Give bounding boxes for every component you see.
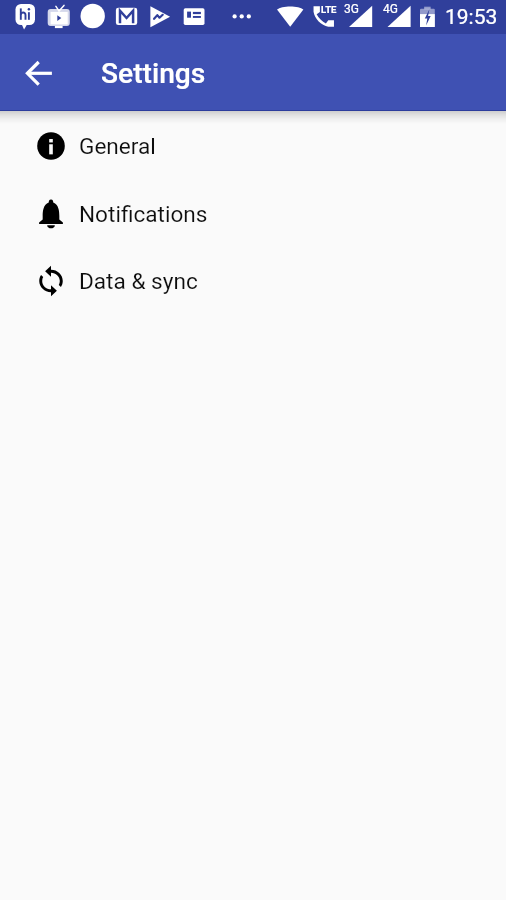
button[interactable]: General — [0, 112, 506, 180]
button[interactable]: Notifications — [0, 180, 506, 248]
staticText: 4G — [383, 2, 398, 16]
button[interactable]: Navigate up — [22, 56, 56, 90]
staticText: 3G — [344, 2, 359, 16]
staticText: Data & sync — [79, 268, 198, 294]
staticText: Notifications — [79, 201, 208, 227]
staticText: General — [79, 133, 156, 159]
staticText: 19:53 — [445, 5, 498, 30]
staticText: LTE — [321, 4, 337, 15]
staticText: Settings — [101, 57, 206, 90]
button[interactable]: Data & sync — [0, 247, 506, 315]
